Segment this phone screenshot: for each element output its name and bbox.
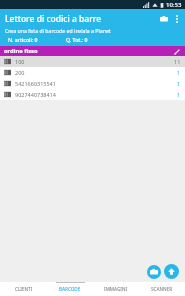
staticText: IMMAGINI xyxy=(104,286,128,292)
button[interactable]: More options xyxy=(171,13,183,25)
staticText: BARCODE xyxy=(59,286,81,292)
button[interactable]: Edit xyxy=(172,47,181,56)
button[interactable]: Scan barcode xyxy=(147,265,161,279)
staticText: SCANNER xyxy=(151,286,173,292)
staticText: 1 xyxy=(177,69,181,76)
staticText: 10:53 xyxy=(166,1,182,9)
button[interactable]: ordine fisso xyxy=(0,46,185,56)
staticText: Lettore di codici a barre xyxy=(5,13,157,25)
staticText: 1 xyxy=(177,80,181,87)
button[interactable]: IMMAGINI xyxy=(93,282,139,296)
button[interactable]: SCANNER xyxy=(139,282,185,296)
staticText: 100 xyxy=(15,58,174,65)
staticText: N. articoli: 0 xyxy=(8,36,38,43)
button[interactable]: 100 xyxy=(0,56,185,67)
staticText: 11 xyxy=(174,58,181,65)
button[interactable]: CLIENTI xyxy=(0,282,47,296)
staticText: 9027440738414 xyxy=(15,91,177,98)
staticText: Crea una lista di barcode ed inviala a P… xyxy=(5,27,111,34)
staticText: Q. Tot.: 0 xyxy=(66,36,88,43)
button[interactable]: 9027440738414 xyxy=(0,89,185,100)
staticText: 1 xyxy=(177,91,181,98)
staticText: ordine fisso xyxy=(4,47,172,55)
staticText: 5421660315541 xyxy=(15,80,177,87)
staticText: 200 xyxy=(15,69,177,76)
button[interactable]: Camera xyxy=(157,12,171,26)
staticText: CLIENTI xyxy=(15,286,33,292)
button[interactable]: Send xyxy=(164,264,179,279)
button[interactable]: 200 xyxy=(0,67,185,78)
button[interactable]: BARCODE xyxy=(47,282,93,296)
button[interactable]: 5421660315541 xyxy=(0,78,185,89)
